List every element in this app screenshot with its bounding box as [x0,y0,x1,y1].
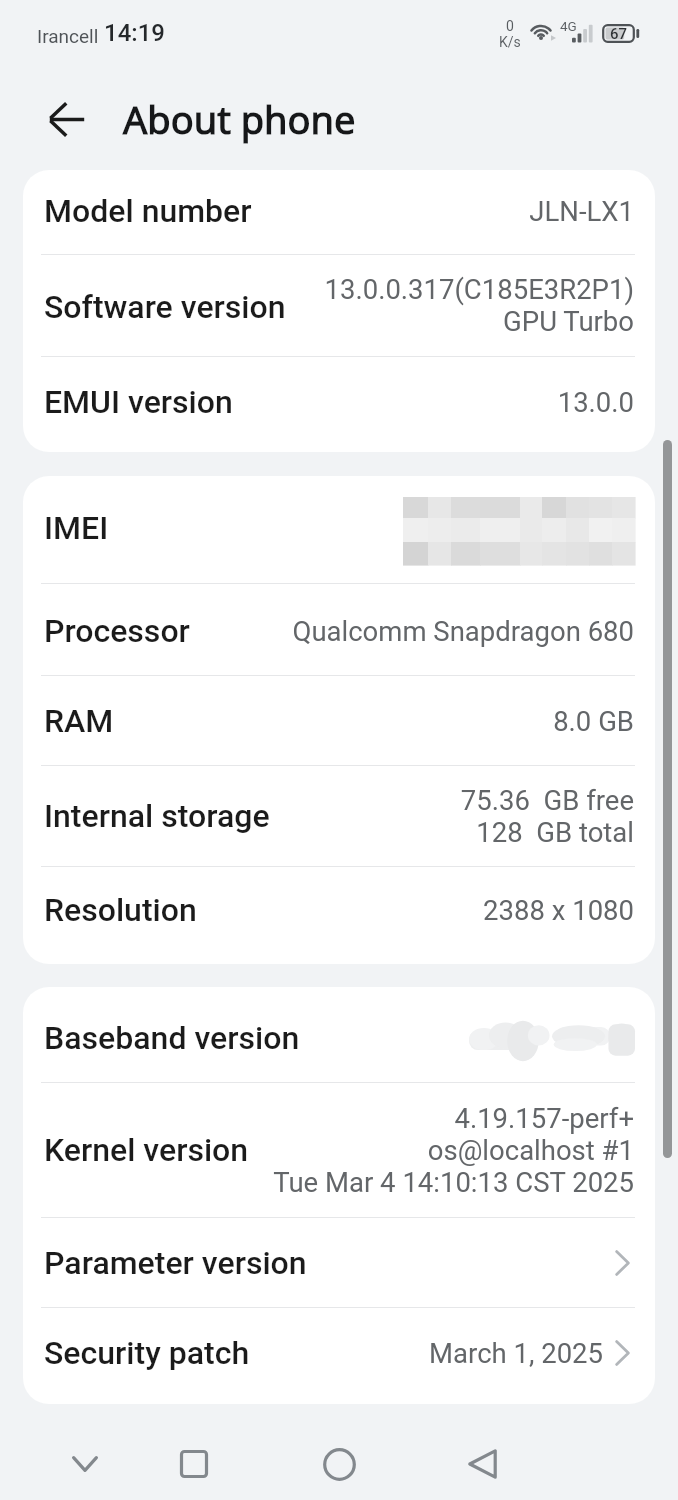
button[interactable]: Software version [23,255,655,356]
staticText: 75.36 GB free [460,784,634,816]
button[interactable]: EMUI version [23,357,655,452]
staticText: Processor [44,612,190,650]
staticText: Security patch [44,1334,250,1372]
button[interactable]: Processor [23,584,655,675]
staticText: Irancell [37,25,99,47]
staticText: About phone [123,93,356,145]
staticText: 13.0.0 [557,386,634,418]
staticText: 14:19 [104,19,165,47]
staticText: 4.19.157-perf+ [454,1102,634,1134]
staticText: Resolution [44,891,197,929]
button[interactable]: Parameter version [23,1218,655,1307]
button[interactable]: Back [446,1428,518,1500]
staticText: Model number [44,192,252,230]
staticText: 8.0 GB [553,705,634,737]
staticText: Internal storage [44,797,270,835]
button[interactable]: Home [303,1428,375,1500]
button[interactable]: Kernel version [23,1083,655,1217]
staticText: 13.0.0.317(C185E3R2P1) [324,273,634,305]
staticText: EMUI version [44,383,233,421]
staticText: IMEI [44,509,109,547]
button[interactable]: Security patch [23,1308,655,1404]
staticText: GPU Turbo [503,305,634,337]
button[interactable]: Recent apps [158,1428,230,1500]
staticText: Tue Mar 4 14:10:13 CST 2025 [273,1166,634,1198]
button[interactable]: Back [38,90,96,148]
staticText: 4G [560,18,577,34]
button[interactable]: Hide keyboard [49,1428,121,1500]
button[interactable]: RAM [23,676,655,765]
button[interactable]: Internal storage [23,766,655,866]
button[interactable]: IMEI [23,476,655,583]
staticText: RAM [44,702,114,740]
staticText: 0 [506,18,514,34]
staticText: Qualcomm Snapdragon 680 [292,615,634,647]
staticText: 67 [610,25,628,43]
staticText: os@localhost #1 [427,1134,634,1166]
button[interactable]: Model number [23,170,655,254]
staticText: Baseband version [44,1019,300,1057]
staticText: 128 GB total [476,816,634,848]
button[interactable]: Baseband version [23,987,655,1082]
staticText: 2388 x 1080 [483,894,634,926]
staticText: Software version [44,288,286,326]
staticText: Parameter version [44,1244,307,1282]
staticText: K/s [499,34,521,50]
staticText: March 1, 2025 [429,1337,603,1369]
staticText: JLN-LX1 [529,195,634,227]
staticText: Kernel version [44,1131,249,1169]
button[interactable]: Resolution [23,867,655,964]
